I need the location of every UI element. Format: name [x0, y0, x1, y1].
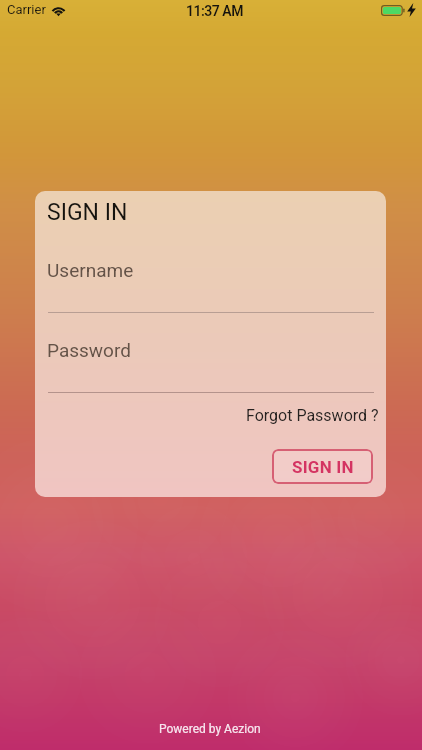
staticText: Username — [47, 259, 134, 281]
button[interactable]: SIGN IN — [272, 449, 373, 484]
staticText: Powered by Aezion — [159, 722, 261, 736]
staticText: Forgot Password ? — [246, 406, 379, 425]
other: Wi-Fi signal — [50, 4, 67, 16]
staticText: SIGN IN — [292, 457, 354, 477]
other: Battery full, charging — [381, 5, 405, 16]
button[interactable]: Forgot Password ? — [246, 406, 379, 425]
staticText: Password — [47, 339, 131, 361]
staticText: SIGN IN — [47, 199, 128, 226]
staticText: 11:37 AM — [186, 3, 243, 19]
staticText: Carrier — [7, 2, 46, 17]
